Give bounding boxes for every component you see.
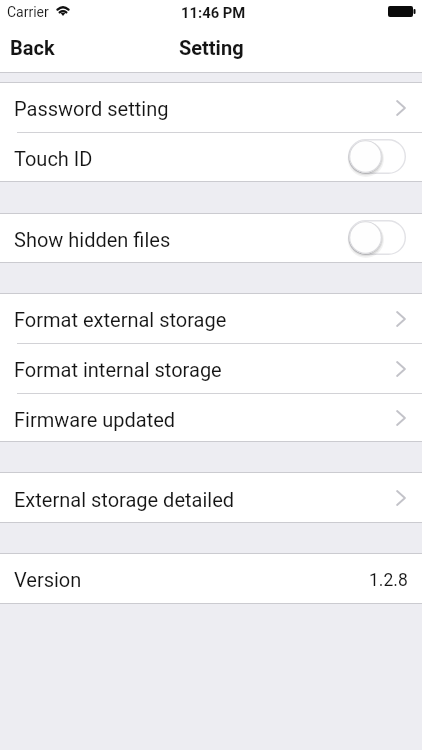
button[interactable]: Firmware updated (0, 394, 422, 442)
button[interactable]: Password setting (0, 83, 422, 132)
other: Open (396, 410, 406, 426)
button[interactable]: Back (0, 32, 69, 65)
staticText: Back (10, 36, 55, 59)
staticText: 11:46 PM (181, 4, 246, 21)
button[interactable]: Toggle (348, 139, 406, 174)
other: Open (396, 311, 406, 327)
button[interactable]: Show hidden files (0, 214, 422, 263)
button[interactable]: Version (0, 554, 422, 603)
other: Open (396, 490, 406, 506)
staticText: Touch ID (14, 147, 93, 170)
button[interactable]: Touch ID (0, 133, 422, 182)
staticText: Password setting (14, 97, 169, 120)
staticText: Setting (179, 36, 244, 59)
staticText: Version (14, 568, 82, 591)
staticText: Format external storage (14, 308, 227, 331)
staticText: Firmware updated (14, 408, 176, 431)
other: Open (396, 100, 406, 116)
staticText: Carrier (7, 4, 49, 20)
button[interactable]: Toggle (348, 220, 406, 255)
other: Open (396, 361, 406, 377)
button[interactable]: External storage detailed (0, 473, 422, 523)
staticText: Show hidden files (14, 228, 171, 251)
staticText: Format internal storage (14, 358, 222, 381)
staticText: External storage detailed (14, 488, 235, 511)
other: Wi-Fi (56, 4, 70, 16)
other: Battery (388, 6, 416, 17)
staticText: 1.2.8 (369, 570, 408, 591)
button[interactable]: Format external storage (0, 294, 422, 343)
button[interactable]: Format internal storage (0, 344, 422, 393)
